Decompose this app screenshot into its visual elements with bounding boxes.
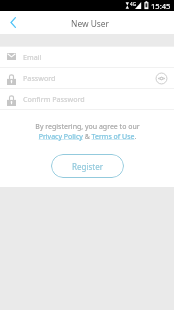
staticText: 4G <box>130 1 136 7</box>
staticText: 15:45 <box>151 1 171 11</box>
staticText: New User <box>71 18 110 29</box>
button[interactable]: Show password <box>154 71 169 86</box>
button[interactable]: Back <box>0 11 26 34</box>
button[interactable]: Email <box>0 47 174 67</box>
button[interactable]: Register <box>51 154 124 178</box>
button[interactable]: Password <box>0 68 174 88</box>
staticText: Password <box>23 73 56 83</box>
staticText: Email <box>23 52 42 62</box>
staticText: Register <box>72 161 104 172</box>
staticText: Confirm Password <box>23 94 85 104</box>
staticText: By registering, you agree to our Privacy… <box>35 122 140 141</box>
button[interactable]: Confirm Password <box>0 89 174 109</box>
